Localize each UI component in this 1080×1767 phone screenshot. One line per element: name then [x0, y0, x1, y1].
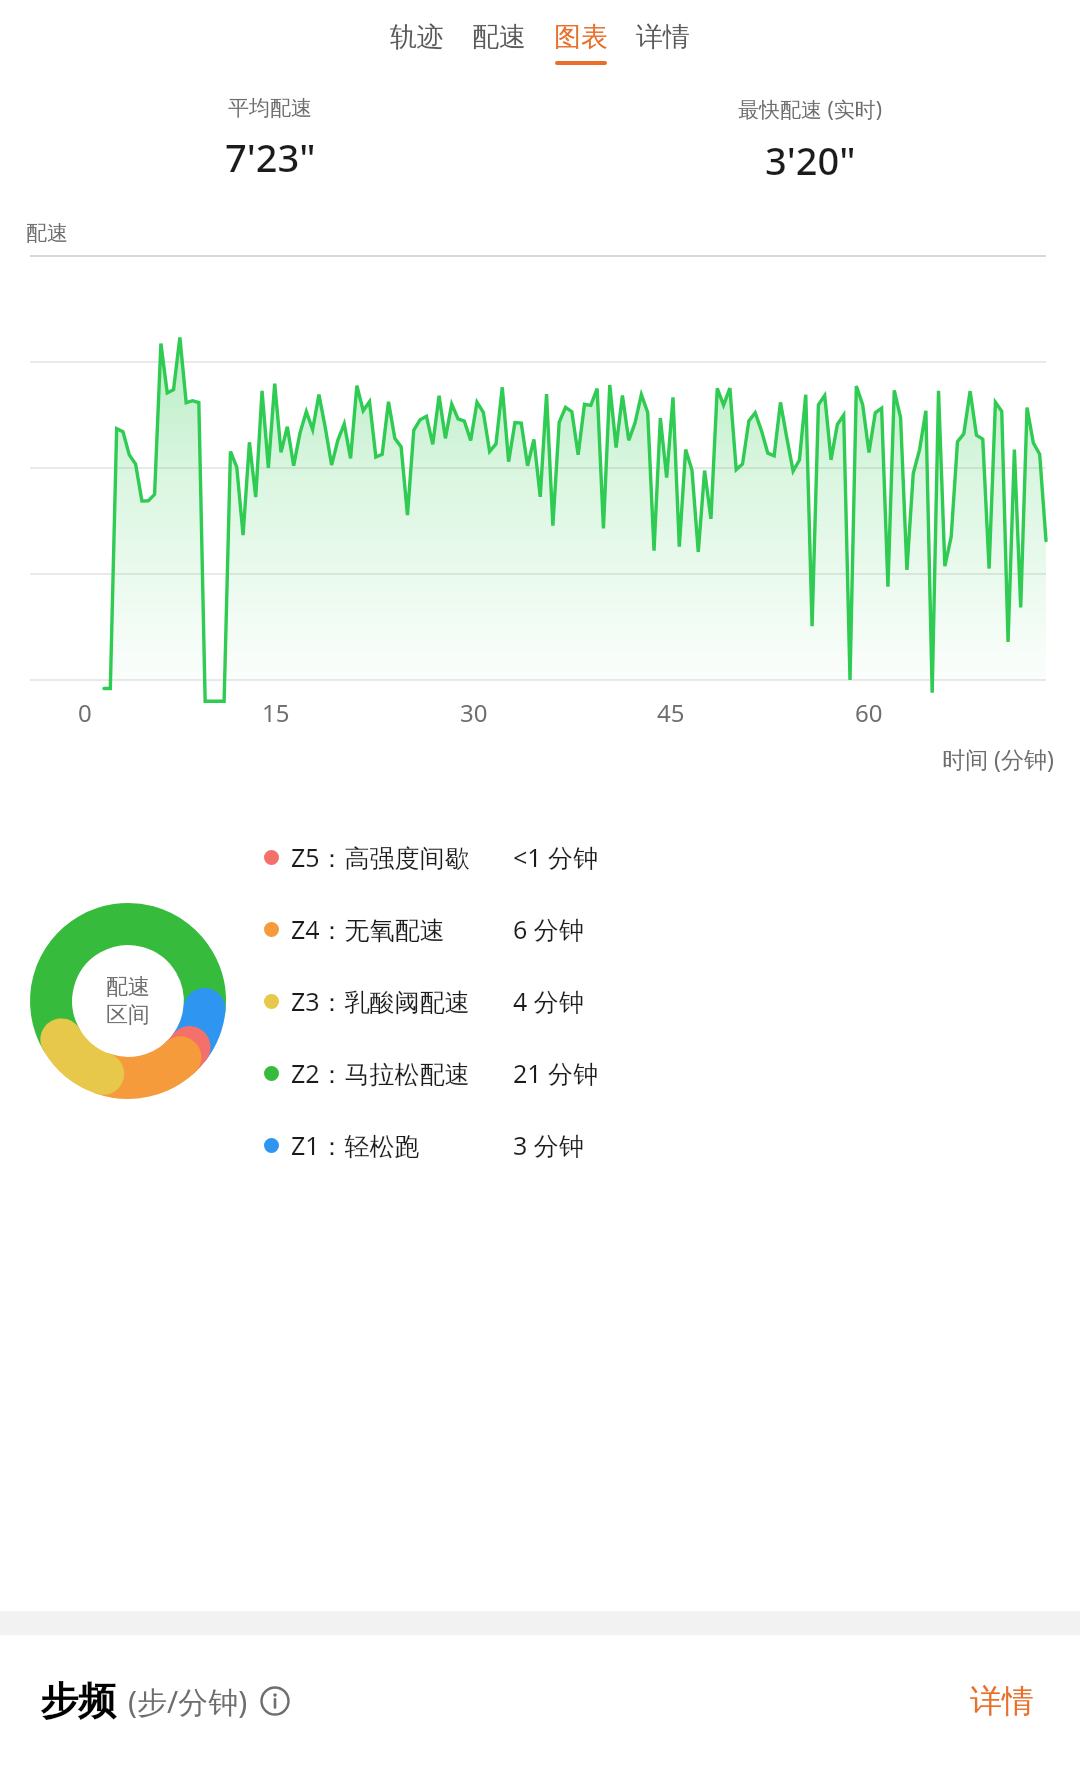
staticText: 3 分钟 — [513, 1128, 584, 1162]
staticText: 30 — [460, 696, 488, 729]
staticText: 45 — [657, 696, 685, 729]
staticText: 配速 — [106, 973, 150, 1001]
staticText: 0 — [78, 696, 92, 729]
button[interactable]: 配速 — [458, 14, 540, 71]
button[interactable]: 详情 — [622, 14, 704, 71]
staticText: 详情 — [636, 20, 690, 54]
staticText: 60 — [855, 696, 883, 729]
staticText: Z4：无氧配速 — [291, 912, 445, 946]
staticText: Z3：乳酸阈配速 — [291, 984, 470, 1018]
staticText: <1 分钟 — [513, 840, 599, 874]
button[interactable]: Z5：高强度间歇 — [264, 834, 1050, 880]
staticText: 区间 — [106, 1001, 150, 1029]
staticText: 6 分钟 — [513, 912, 584, 946]
button[interactable]: 图表 — [540, 14, 622, 71]
staticText: 最快配速 (实时) — [738, 95, 883, 124]
staticText: 配速 — [26, 220, 68, 246]
button[interactable]: Z4：无氧配速 — [264, 906, 1050, 952]
button[interactable]: 信息 — [260, 1686, 290, 1716]
button[interactable]: 轨迹 — [376, 14, 458, 71]
button[interactable]: Z3：乳酸阈配速 — [264, 978, 1050, 1024]
staticText: 4 分钟 — [513, 984, 584, 1018]
staticText: 步频 — [40, 1677, 116, 1725]
button[interactable]: Z2：马拉松配速 — [264, 1050, 1050, 1096]
staticText: 平均配速 — [228, 95, 312, 121]
staticText: 图表 — [554, 20, 608, 54]
button[interactable]: 详情 — [964, 1673, 1040, 1729]
staticText: 15 — [262, 696, 290, 729]
staticText: 7'23" — [225, 131, 316, 183]
staticText: 时间 (分钟) — [942, 743, 1054, 774]
staticText: Z1：轻松跑 — [291, 1128, 420, 1162]
staticText: 3'20" — [765, 134, 856, 186]
staticText: Z5：高强度间歇 — [291, 840, 470, 874]
staticText: Z2：马拉松配速 — [291, 1056, 470, 1090]
button[interactable]: Z1：轻松跑 — [264, 1122, 1050, 1168]
staticText: 21 分钟 — [513, 1056, 599, 1090]
staticText: 轨迹 — [390, 20, 444, 54]
staticText: 详情 — [970, 1681, 1034, 1721]
staticText: 配速 — [472, 20, 526, 54]
staticText: (步/分钟) — [128, 1681, 248, 1722]
